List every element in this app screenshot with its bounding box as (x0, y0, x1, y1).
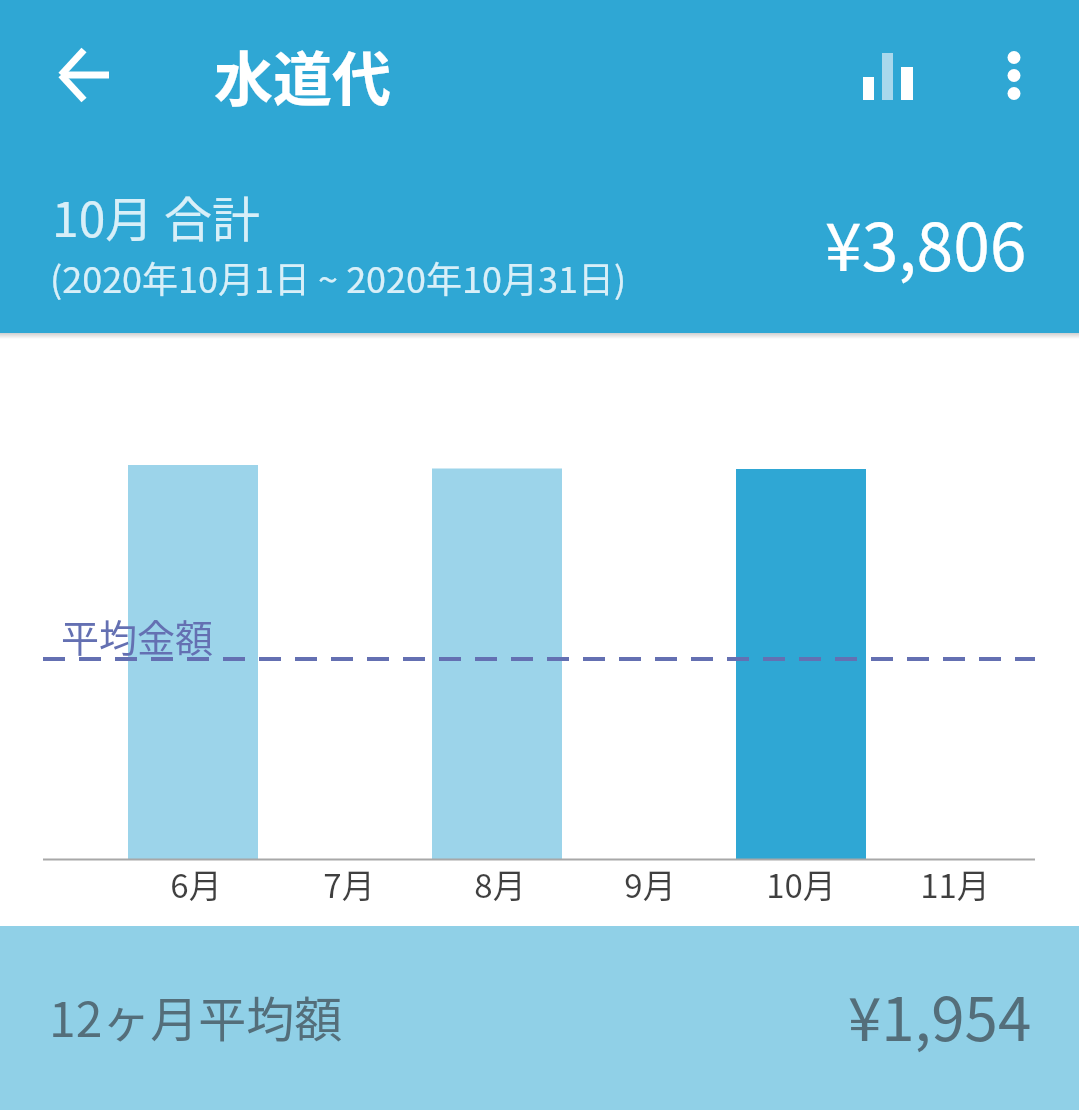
staticText: (2020年10月1日 ~ 2020年10月31日) (50, 251, 627, 303)
staticText: ¥1,954 (848, 971, 1032, 1058)
button[interactable] (843, 30, 933, 120)
staticText: 7月 (323, 860, 375, 908)
staticText: 10月 合計 (52, 181, 261, 251)
staticText: 10月 (766, 860, 836, 908)
staticText: ¥3,806 (825, 194, 1027, 290)
staticText: 6月 (170, 860, 222, 908)
staticText: 11月 (920, 860, 990, 908)
button[interactable] (978, 30, 1050, 120)
staticText: 水道代 (214, 33, 392, 118)
button[interactable] (34, 24, 136, 126)
staticText: 平均金額 (61, 608, 214, 663)
staticText: 8月 (474, 860, 526, 908)
staticText: 12ヶ月平均額 (49, 981, 343, 1051)
staticText: 9月 (624, 860, 676, 908)
